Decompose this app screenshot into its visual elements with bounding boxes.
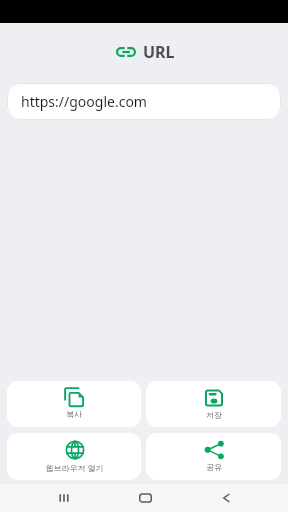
button[interactable]: 복사 — [7, 381, 141, 427]
button[interactable]: 공유 — [146, 433, 281, 480]
button[interactable]: Recent apps — [44, 484, 84, 512]
staticText: URL — [143, 41, 175, 63]
staticText: https://google.com — [21, 92, 147, 111]
staticText: 복사 — [66, 409, 82, 419]
button[interactable]: Back — [206, 484, 246, 512]
staticText: 공유 — [206, 462, 222, 472]
staticText: 웹브라우저 열기 — [45, 462, 104, 473]
button[interactable]: Home — [125, 484, 165, 512]
button[interactable]: 웹브라우저 열기 — [7, 433, 141, 480]
staticText: 저장 — [206, 410, 222, 420]
button[interactable]: https://google.com — [7, 83, 281, 120]
button[interactable]: 저장 — [146, 381, 281, 427]
